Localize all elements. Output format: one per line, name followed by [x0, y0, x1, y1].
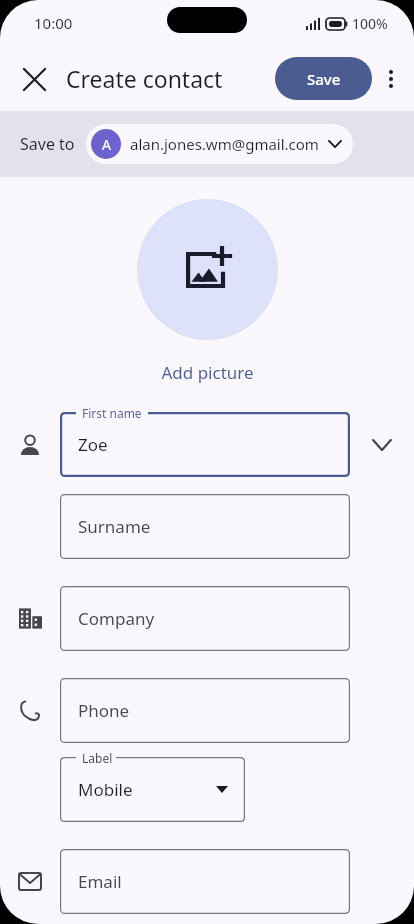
staticText: Save to: [20, 133, 75, 155]
button[interactable]: Surname: [60, 494, 350, 559]
button[interactable]: More options: [370, 58, 412, 100]
button[interactable]: Company: [60, 586, 350, 651]
staticText: Create contact: [66, 63, 223, 94]
button[interactable]: Phone: [60, 678, 350, 743]
staticText: alan.jones.wm@gmail.com: [130, 134, 319, 154]
staticText: 100%: [352, 14, 388, 33]
staticText: Company: [78, 607, 155, 630]
button[interactable]: Close: [10, 55, 58, 103]
button[interactable]: Email: [60, 849, 350, 914]
button[interactable]: Save: [275, 57, 372, 100]
staticText: Mobile: [78, 778, 133, 801]
button[interactable]: Add picture: [161, 361, 254, 384]
staticText: A: [102, 135, 111, 154]
button[interactable]: Label: [60, 757, 245, 822]
staticText: First name: [82, 405, 142, 421]
button[interactable]: Expand name fields: [350, 413, 414, 477]
button[interactable]: Label: [60, 757, 245, 822]
button[interactable]: First name: [60, 412, 350, 477]
staticText: Surname: [78, 515, 151, 538]
staticText: Zoe: [78, 433, 108, 456]
staticText: Save: [307, 69, 341, 89]
staticText: Label: [82, 750, 113, 766]
staticText: Phone: [78, 699, 130, 722]
staticText: Email: [78, 870, 122, 893]
button[interactable]: A: [86, 124, 353, 164]
button[interactable]: Add picture: [137, 199, 278, 340]
staticText: 10:00: [34, 13, 73, 33]
